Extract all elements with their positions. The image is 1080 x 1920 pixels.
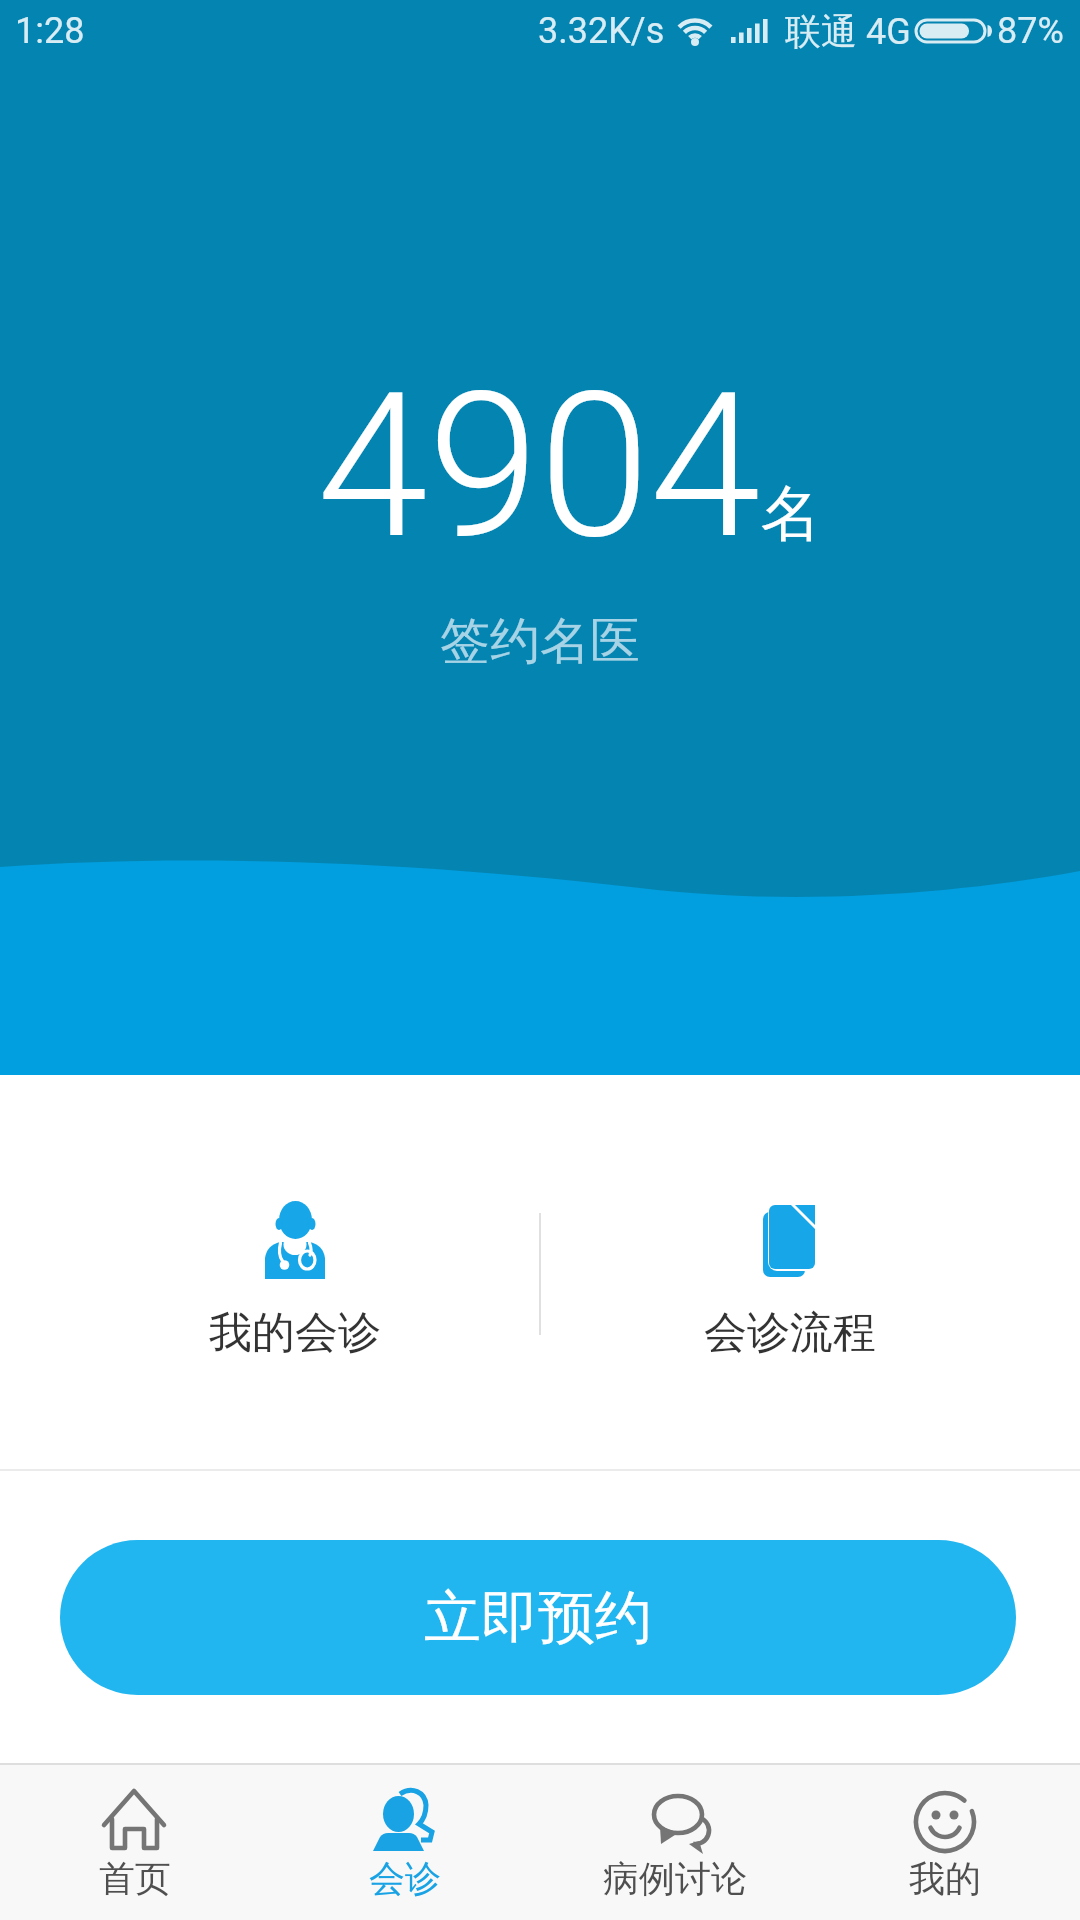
button[interactable]: 立即预约 xyxy=(60,1540,1016,1695)
button[interactable]: 病例讨论 xyxy=(540,1765,810,1920)
staticText: 会诊 xyxy=(369,1856,441,1901)
button[interactable]: 会诊 xyxy=(270,1765,540,1920)
staticText: 87% xyxy=(997,10,1064,52)
staticText: 立即预约 xyxy=(424,1582,652,1654)
button[interactable]: 我的 xyxy=(810,1765,1080,1920)
staticText: 病例讨论 xyxy=(603,1856,747,1901)
staticText: 会诊流程 xyxy=(704,1306,876,1360)
staticText: 1:28 xyxy=(15,10,85,52)
button[interactable]: 会诊流程 xyxy=(640,1185,940,1370)
staticText: 3.32K/s xyxy=(538,10,665,52)
button[interactable]: 首页 xyxy=(0,1765,270,1920)
button[interactable]: 我的会诊 xyxy=(145,1185,445,1370)
staticText: 名 xyxy=(761,476,821,552)
staticText: 我的会诊 xyxy=(209,1306,381,1360)
staticText: 联通 4G xyxy=(785,9,911,54)
staticText: 4904 xyxy=(317,349,761,583)
staticText: 签约名医 xyxy=(440,610,640,673)
staticText: 我的 xyxy=(909,1856,981,1901)
staticText: 首页 xyxy=(99,1856,171,1901)
